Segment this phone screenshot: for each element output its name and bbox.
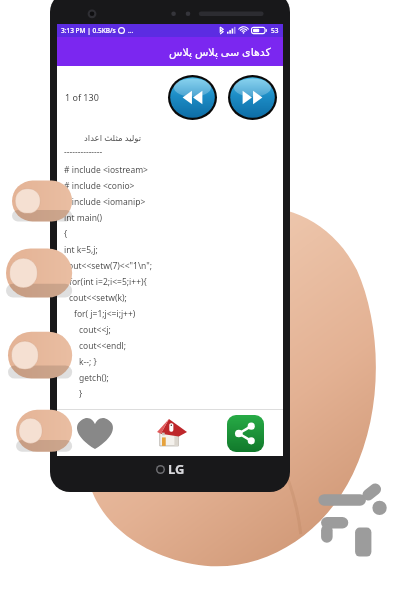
staticText: { — [64, 228, 68, 240]
staticText: کدهای سی پلاس پلاس — [169, 44, 271, 59]
button[interactable]: Home — [133, 410, 208, 456]
staticText: 3:13 PM | 0.5KB/s — [61, 26, 116, 35]
staticText: int main() — [64, 212, 102, 224]
button[interactable]: کدهای سی پلاس پلاس — [57, 37, 283, 66]
staticText: cout<<setw(k); — [69, 292, 127, 304]
staticText: } — [79, 388, 83, 400]
staticText: ... — [128, 26, 134, 35]
staticText: for(int i=2;i<=5;i++){ — [69, 276, 147, 288]
staticText: # include <iostream> — [64, 164, 148, 176]
staticText: k--; } — [79, 356, 97, 368]
staticText: int k=5,j; — [64, 244, 98, 256]
staticText: for( j=1;j<=i;j++) — [74, 308, 136, 320]
staticText: cout<<j; — [79, 324, 111, 336]
staticText: getch(); — [79, 372, 109, 384]
staticText: LG — [168, 460, 185, 478]
button[interactable]: Share — [208, 410, 283, 456]
button[interactable]: Previous — [168, 75, 217, 120]
staticText: تولید مثلث اعداد — [84, 132, 142, 144]
staticText: 1 of 130 — [65, 91, 99, 103]
staticText: -------------- — [64, 146, 103, 158]
staticText: cout<<endl; — [79, 340, 127, 352]
staticText: # include <conio> — [64, 180, 135, 192]
staticText: cout<<setw(7)<<"1\n"; — [64, 260, 152, 272]
staticText: # include <iomanip> — [64, 196, 146, 208]
button[interactable]: Next — [228, 75, 277, 120]
staticText: 53 — [271, 26, 279, 35]
button[interactable]: Favorite — [57, 410, 133, 456]
